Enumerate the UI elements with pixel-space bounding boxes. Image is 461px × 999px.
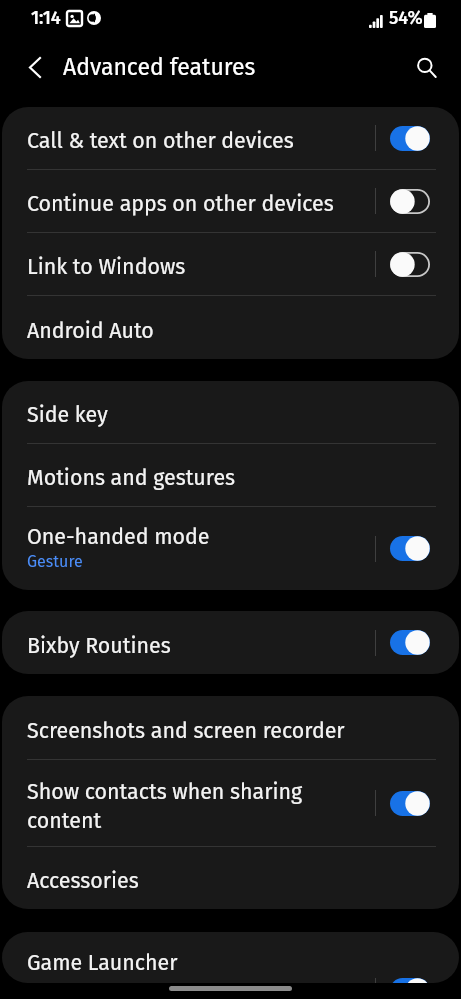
button[interactable]: Game Launcher (2, 932, 459, 983)
staticText: Link to Windows (27, 254, 186, 280)
button[interactable]: Call & text on other devices (2, 107, 459, 169)
staticText: Side key (27, 402, 108, 428)
button[interactable]: Switch off (390, 189, 430, 214)
button[interactable]: Side key (2, 381, 459, 443)
button[interactable]: Link to Windows (2, 233, 459, 295)
button[interactable]: Switch off (390, 252, 430, 277)
button[interactable]: Screenshots and screen recorder (2, 696, 459, 759)
staticText: Accessories (27, 868, 139, 894)
staticText: One-handed mode (27, 524, 210, 550)
staticText: 1:14 (31, 7, 61, 29)
button[interactable]: Android Auto (2, 296, 459, 359)
staticText: Advanced features (63, 53, 256, 81)
button[interactable]: Switch on (390, 536, 430, 561)
staticText: Call & text on other devices (27, 128, 294, 154)
staticText: Show contacts when sharing content (27, 779, 333, 833)
staticText: Bixby Routines (27, 633, 171, 659)
button[interactable]: Switch on (390, 630, 430, 655)
button[interactable]: Back (0, 36, 63, 98)
button[interactable]: Search (391, 36, 461, 98)
staticText: Motions and gestures (27, 465, 236, 491)
button[interactable]: Switch on (390, 126, 430, 151)
staticText: Continue apps on other devices (27, 191, 334, 217)
button[interactable]: Switch on (390, 791, 430, 816)
button[interactable]: One-handed mode (2, 507, 459, 590)
button[interactable]: Continue apps on other devices (2, 170, 459, 232)
button[interactable]: Switch on (390, 978, 430, 983)
staticText: Game Launcher (27, 950, 375, 976)
button[interactable]: Accessories (2, 847, 459, 909)
staticText: Gesture (27, 552, 83, 571)
button[interactable]: Show contacts when sharing content (2, 760, 459, 846)
staticText: Screenshots and screen recorder (27, 718, 345, 744)
staticText: 54% (389, 7, 423, 29)
staticText: Android Auto (27, 318, 154, 344)
button[interactable]: Bixby Routines (2, 611, 459, 674)
button[interactable]: Motions and gestures (2, 444, 459, 506)
